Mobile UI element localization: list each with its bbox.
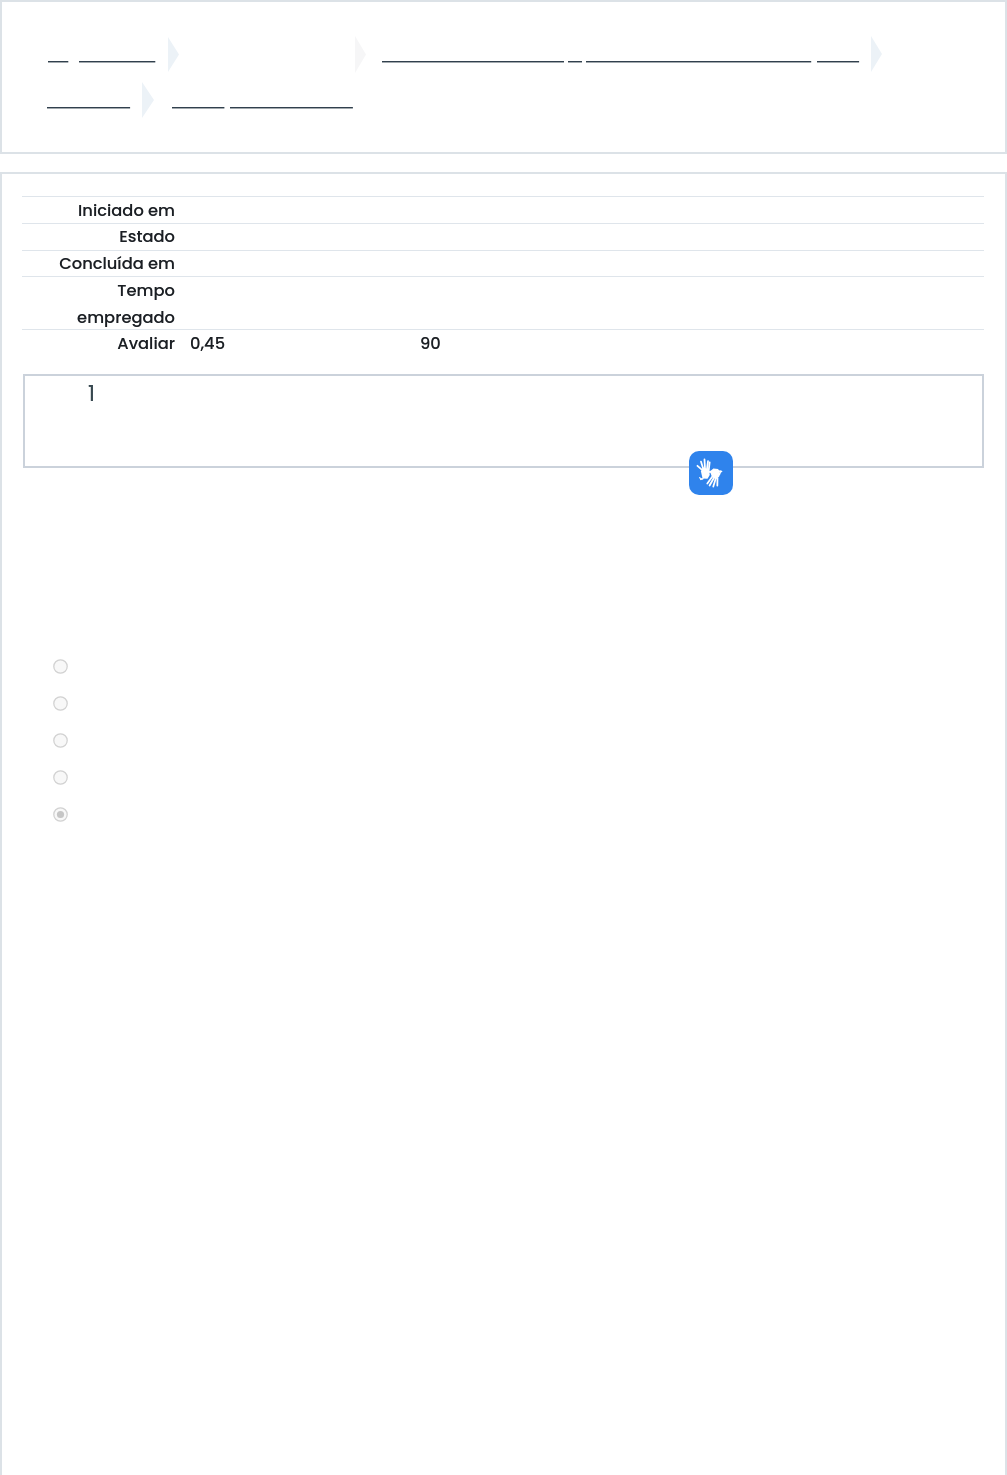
button[interactable]: Breadcrumb level 1 name	[79, 47, 157, 67]
staticText: Concluída em	[0, 252, 175, 275]
button[interactable]: Answer option	[52, 658, 69, 675]
button[interactable]: Answer option	[52, 695, 69, 712]
staticText: empregado	[0, 306, 175, 329]
staticText: 90	[420, 332, 441, 355]
staticText: Iniciado em	[0, 199, 175, 222]
button[interactable]: Breadcrumb level 3	[47, 93, 132, 113]
button[interactable]: Breadcrumb separator word	[568, 47, 584, 67]
staticText: 0,45	[190, 332, 226, 355]
button[interactable]: Breadcrumb level 1	[48, 47, 70, 67]
button[interactable]: Breadcrumb level 2 suffix	[817, 47, 861, 67]
staticText: Concluída em	[0, 252, 175, 275]
staticText: 90	[420, 332, 441, 355]
staticText: Estado	[0, 225, 175, 248]
staticText: 1	[88, 378, 95, 408]
button[interactable]: VLibras sign language	[689, 451, 733, 495]
button[interactable]: Answer option	[52, 732, 69, 749]
button[interactable]: Answer option	[52, 769, 69, 786]
staticText: Estado	[0, 225, 175, 248]
staticText: Tempo	[0, 279, 175, 302]
staticText: Iniciado em	[0, 199, 175, 222]
button[interactable]: Breadcrumb level 4	[172, 93, 226, 113]
staticText: 0,45	[190, 332, 226, 355]
staticText: Avaliar	[0, 332, 175, 355]
button[interactable]: Selected answer option	[52, 806, 69, 823]
staticText: Avaliar	[0, 332, 175, 355]
button[interactable]: Breadcrumb level 2	[382, 47, 566, 67]
staticText: empregado	[0, 306, 175, 329]
staticText: Tempo	[0, 279, 175, 302]
button[interactable]: Breadcrumb level 2 name	[586, 47, 813, 67]
button[interactable]: Breadcrumb current page	[230, 93, 355, 113]
staticText: 1	[88, 378, 95, 408]
